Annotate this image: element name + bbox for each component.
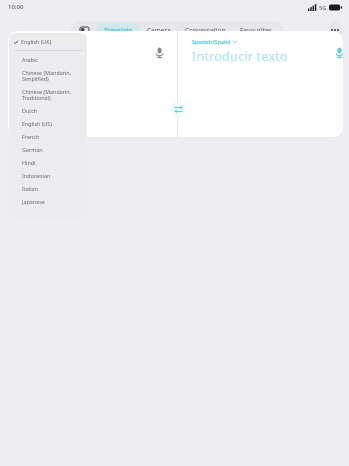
staticText: German [22,146,43,153]
staticText: Arabic [22,56,38,63]
staticText: Chinese (Mandarin, Traditional) [22,88,72,102]
staticText: Camera [147,26,171,35]
button[interactable]: Favourites [233,23,279,38]
staticText: Conversation [185,26,226,35]
staticText: Spanish (Spain) [192,38,231,45]
staticText: Dutch [22,107,38,114]
staticText: French [22,133,40,140]
staticText: Translate [104,26,133,35]
staticText: Italian [22,185,38,192]
staticText: 5G [319,4,327,11]
staticText: 10:00 [8,3,24,11]
staticText: Chinese (Mandarin, Simplified) [22,69,72,83]
staticText: Hindi [22,159,36,166]
staticText: English (UK) [21,38,52,45]
button[interactable]: French [9,130,87,143]
staticText: Introducir texto [192,47,288,65]
staticText: Indonesian [22,172,51,179]
button[interactable]: Conversation [178,23,233,38]
button[interactable]: More options [327,22,343,38]
button[interactable]: Dutch [9,104,87,117]
button[interactable]: German [9,143,87,156]
button[interactable]: Japanese [9,195,87,208]
button[interactable]: English (UK) [9,33,87,50]
button[interactable]: Translate [97,23,140,38]
button[interactable]: Spanish (Spain) [192,38,237,45]
button[interactable]: Italian [9,182,87,195]
button[interactable]: Chinese (Mandarin, Traditional) [9,85,87,104]
button[interactable]: Swap languages [170,101,186,117]
button[interactable]: English (US) [9,117,87,130]
button[interactable]: Camera [140,23,178,38]
button[interactable]: Chinese (Mandarin, Simplified) [9,66,87,85]
staticText: Favourites [240,26,272,35]
button[interactable]: Arabic [9,53,87,66]
button[interactable]: Toggle side panel [74,23,94,38]
button[interactable]: Speak Spanish [330,43,343,61]
button[interactable]: Speak [150,43,168,61]
staticText: Japanese [22,198,45,205]
staticText: English (US) [22,120,52,127]
button[interactable]: Hindi [9,156,87,169]
button[interactable]: Indonesian [9,169,87,182]
